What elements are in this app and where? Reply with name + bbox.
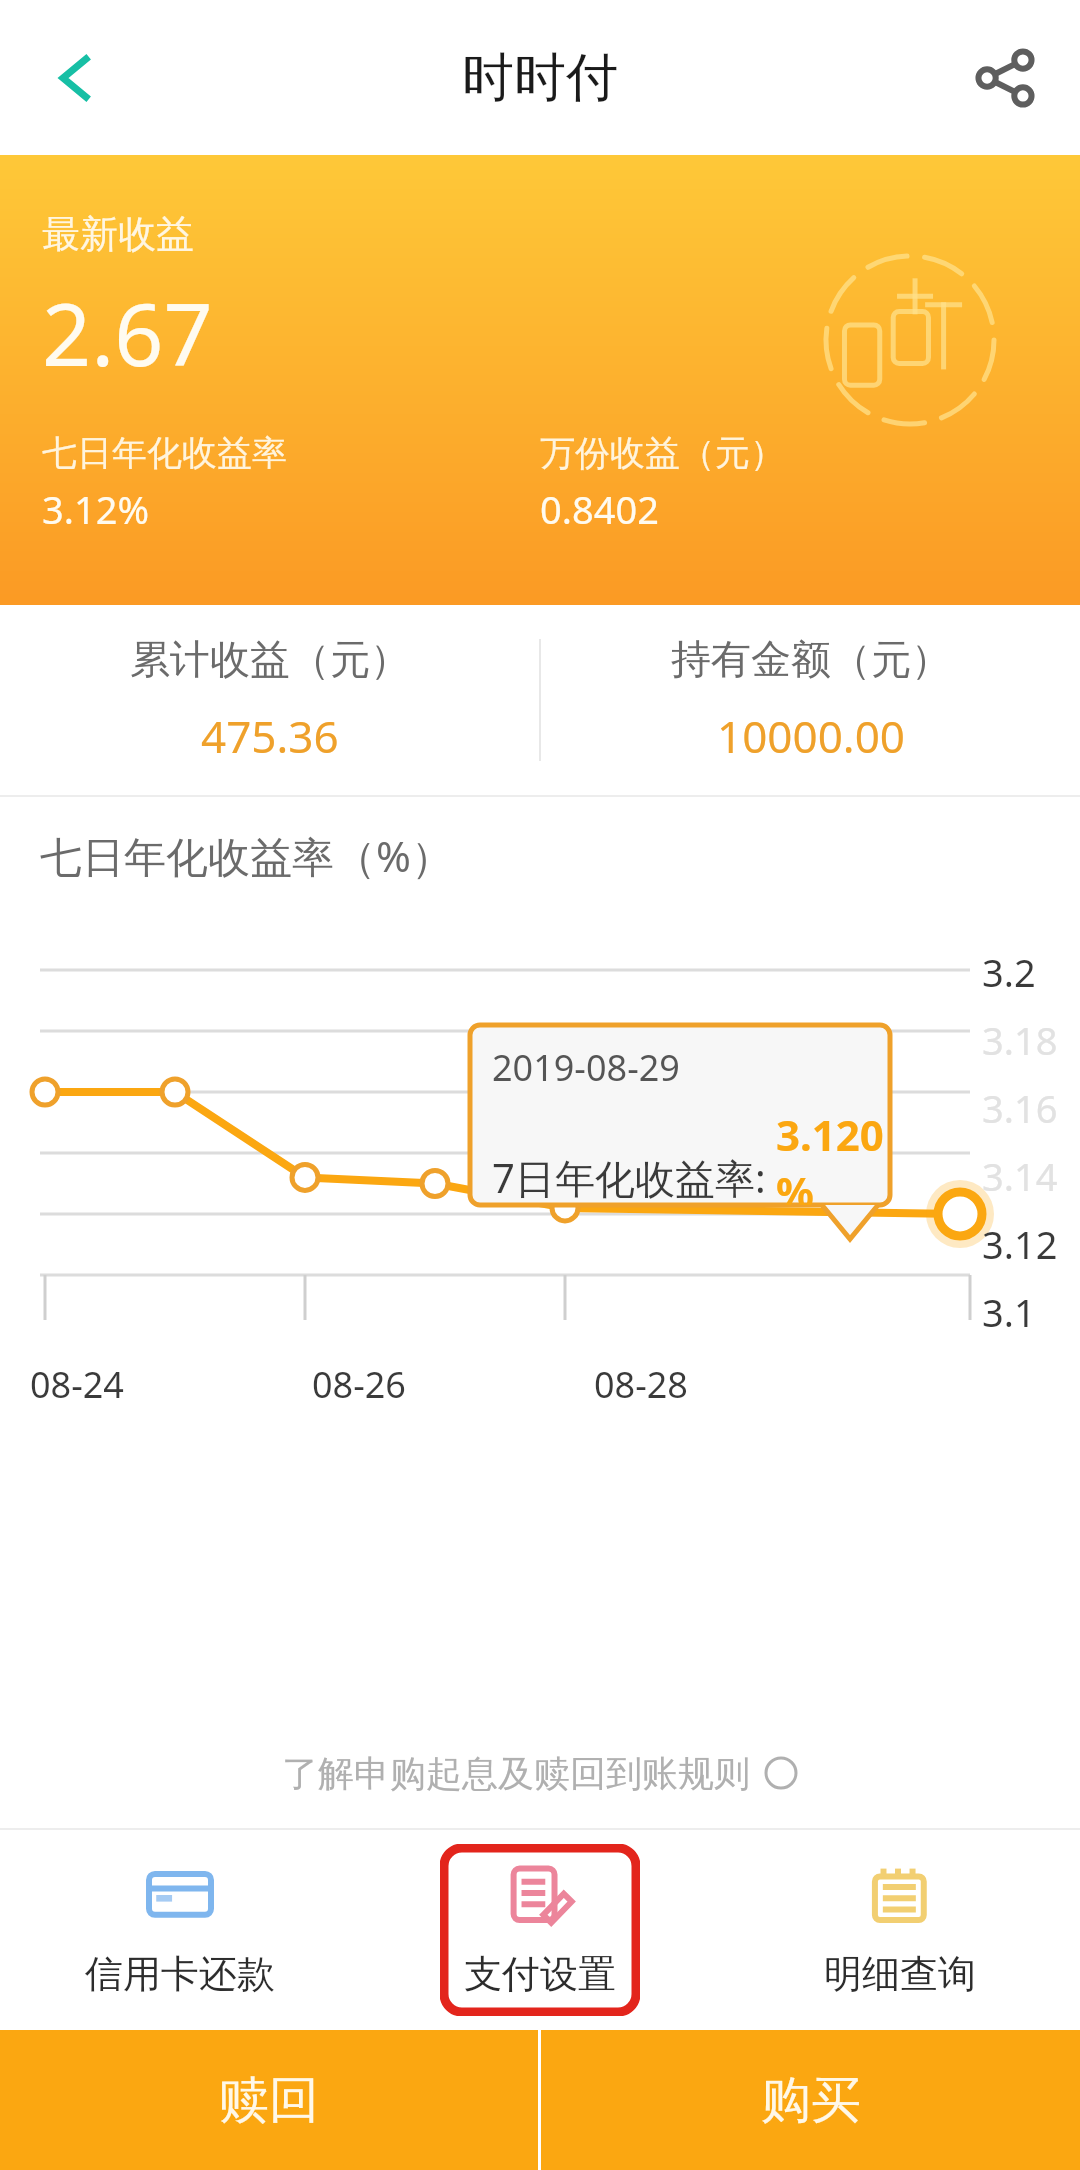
staticText: 3.14 xyxy=(982,1150,1058,1202)
staticText: 3.18 xyxy=(982,1014,1058,1066)
staticText: 3.12 xyxy=(982,1218,1058,1270)
button[interactable]: 信用卡还款 xyxy=(80,1844,280,2016)
staticText: 3.2 xyxy=(982,946,1036,998)
button[interactable]: 累计收益（元） xyxy=(0,605,539,795)
button[interactable]: 赎回 xyxy=(0,2030,538,2170)
staticText: 08-24 xyxy=(30,1360,124,1409)
button[interactable]: 支付设置 xyxy=(440,1844,640,2016)
staticText: 支付设置 xyxy=(464,1950,616,1998)
button[interactable]: 明细查询 xyxy=(800,1844,1000,2016)
staticText: 赎回 xyxy=(219,2069,319,2132)
staticText: 持有金额（元） xyxy=(671,634,951,684)
staticText: 08-28 xyxy=(594,1360,688,1409)
staticText: 时时付 xyxy=(462,45,618,111)
staticText: 了解申购起息及赎回到账规则 xyxy=(282,1751,750,1796)
staticText: 七日年化收益率（%） xyxy=(40,827,453,884)
staticText: 2019-08-29 xyxy=(492,1043,680,1092)
staticText: 累计收益（元） xyxy=(130,634,410,684)
staticText: 信用卡还款 xyxy=(85,1950,275,1998)
staticText: 10000.00 xyxy=(717,706,905,766)
button[interactable]: Back xyxy=(30,33,120,123)
staticText: 3.12% xyxy=(42,483,149,535)
staticText: 2.67 xyxy=(42,274,213,391)
staticText: 购买 xyxy=(761,2069,861,2132)
staticText: 08-26 xyxy=(312,1360,406,1409)
button[interactable]: Share xyxy=(960,33,1050,123)
staticText: 3.1 xyxy=(982,1286,1036,1338)
staticText: 明细查询 xyxy=(824,1950,976,1998)
staticText: 万份收益（元） xyxy=(540,431,785,475)
staticText: 475.36 xyxy=(201,706,339,766)
staticText: 0.8402 xyxy=(540,483,659,535)
staticText: 最新收益 xyxy=(42,210,194,258)
staticText: 3.120 % xyxy=(776,1106,890,1205)
staticText: 七日年化收益率 xyxy=(42,431,287,475)
button[interactable]: 持有金额（元） xyxy=(541,605,1080,795)
button[interactable]: 购买 xyxy=(541,2030,1080,2170)
button[interactable]: 了解申购起息及赎回到账规则 xyxy=(0,1718,1080,1828)
staticText: 3.16 xyxy=(982,1082,1058,1134)
staticText: 7日年化收益率: xyxy=(492,1150,776,1205)
